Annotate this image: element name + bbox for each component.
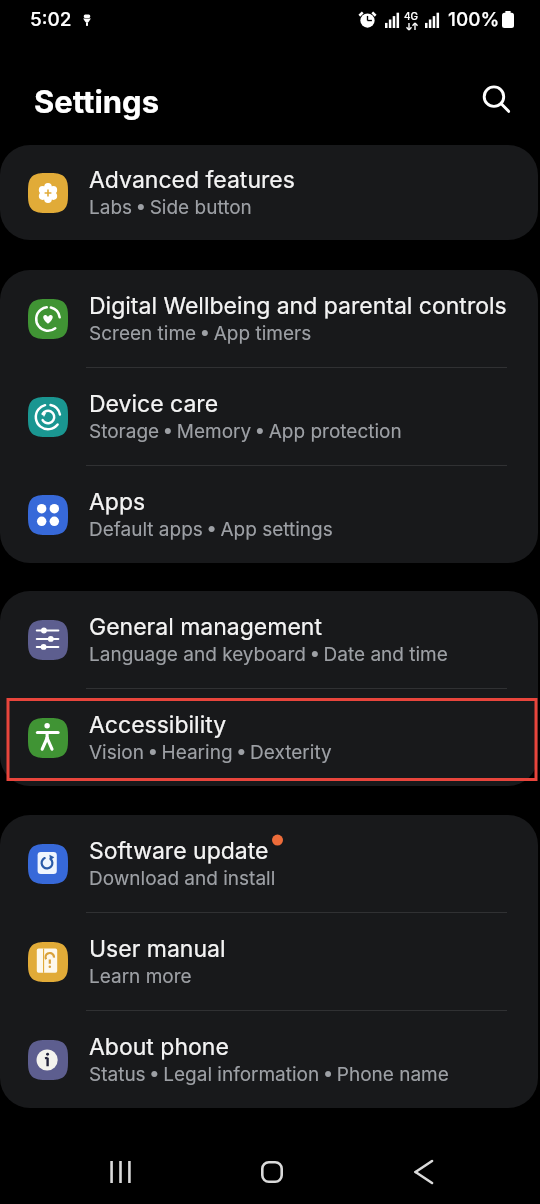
- staticText: 4G: [404, 10, 419, 22]
- staticText: Device care: [89, 390, 219, 418]
- staticText: 100%: [448, 8, 500, 31]
- staticText: About phone: [89, 1033, 229, 1061]
- button[interactable]: Software update: [0, 815, 538, 912]
- button[interactable]: About phone: [0, 1011, 538, 1108]
- button[interactable]: Recent apps: [92, 1153, 148, 1191]
- staticText: Storage • Memory • App protection: [89, 420, 402, 443]
- staticText: Vision • Hearing • Dexterity: [89, 741, 332, 764]
- staticText: Accessibility: [89, 711, 227, 739]
- staticText: Default apps • App settings: [89, 518, 333, 541]
- staticText: Labs • Side button: [89, 196, 252, 219]
- staticText: Learn more: [89, 965, 192, 988]
- staticText: User manual: [89, 935, 226, 963]
- button[interactable]: General management: [0, 591, 538, 688]
- button[interactable]: Home: [244, 1153, 300, 1191]
- button[interactable]: Back: [395, 1153, 451, 1191]
- button[interactable]: Advanced features: [0, 145, 538, 240]
- staticText: General management: [89, 613, 322, 641]
- staticText: Status • Legal information • Phone name: [89, 1063, 449, 1086]
- button[interactable]: Apps: [0, 466, 538, 563]
- staticText: 5:02: [30, 8, 72, 31]
- staticText: Advanced features: [89, 166, 295, 194]
- button[interactable]: Accessibility: [0, 689, 538, 786]
- staticText: Screen time • App timers: [89, 322, 312, 345]
- staticText: Apps: [89, 488, 146, 516]
- staticText: Digital Wellbeing and parental controls: [89, 292, 507, 320]
- staticText: Software update: [89, 837, 269, 865]
- button[interactable]: User manual: [0, 913, 538, 1010]
- staticText: Language and keyboard • Date and time: [89, 643, 448, 666]
- button[interactable]: Search: [483, 86, 513, 116]
- staticText: Settings: [34, 83, 160, 121]
- button[interactable]: Digital Wellbeing and parental controls: [0, 270, 538, 367]
- button[interactable]: Device care: [0, 368, 538, 465]
- staticText: Download and install: [89, 867, 276, 890]
